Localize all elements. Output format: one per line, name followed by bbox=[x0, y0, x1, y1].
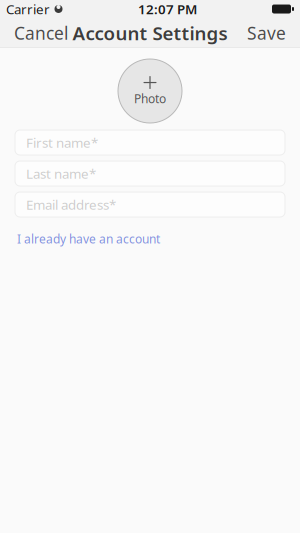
staticText: Email address* bbox=[26, 196, 116, 213]
staticText: 12:07 PM bbox=[138, 0, 197, 18]
staticText: Carrier bbox=[6, 0, 50, 18]
staticText: Cancel bbox=[14, 21, 68, 44]
button[interactable]: Last name* bbox=[15, 161, 285, 186]
button[interactable]: Email address* bbox=[15, 192, 285, 217]
button[interactable]: Add Photo bbox=[118, 59, 182, 123]
staticText: Last name* bbox=[26, 165, 96, 182]
staticText: Photo bbox=[134, 90, 166, 106]
button[interactable]: Cancel bbox=[4, 15, 78, 50]
button[interactable]: Save bbox=[237, 15, 296, 50]
staticText: I already have an account bbox=[17, 231, 160, 247]
staticText: First name* bbox=[26, 134, 98, 151]
button[interactable]: I already have an account bbox=[17, 227, 160, 251]
staticText: Save bbox=[247, 21, 286, 44]
staticText: Account Settings bbox=[72, 21, 227, 45]
button[interactable]: First name* bbox=[15, 130, 285, 155]
